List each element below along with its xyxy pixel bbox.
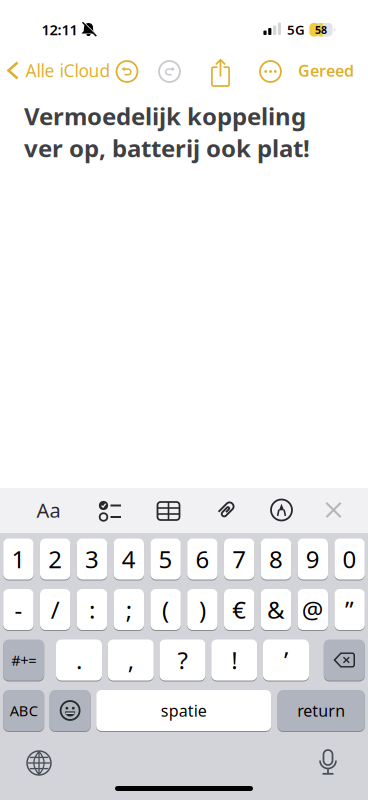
staticText: ; [126,594,132,625]
staticText: Alle iCloud [25,59,110,82]
staticText: 5 [159,543,173,575]
staticText: 8 [269,543,283,575]
button[interactable]: spatie [96,690,271,731]
button[interactable]: ) [187,589,218,630]
staticText: 3 [85,543,99,575]
button[interactable]: Checklist [96,497,121,525]
staticText: @ [302,594,324,625]
staticText: 58 [315,23,327,37]
staticText: , [128,644,134,676]
staticText: ( [162,594,169,625]
staticText: 6 [195,543,209,575]
staticText: #+= [11,650,36,670]
staticText: Aa [36,497,60,523]
staticText: 2 [48,543,62,575]
button[interactable]: 9 [298,538,328,579]
button[interactable]: 5 [150,538,181,579]
staticText: ) [199,594,206,625]
button[interactable]: ; [114,589,144,630]
button[interactable]: 3 [77,538,107,579]
button[interactable]: Emoji [50,690,91,731]
button[interactable]: Dictate [315,749,341,775]
staticText: spatie [161,700,207,721]
staticText: 1 [11,543,25,575]
button[interactable]: @ [298,589,328,630]
staticText: 5G [287,21,305,38]
staticText: 7 [232,543,246,575]
button[interactable]: Next keyboard [27,751,51,775]
button[interactable]: Table [155,498,181,524]
staticText: Vermoedelijk koppeling [24,100,306,132]
staticText: : [89,594,95,625]
button[interactable]: Delete [324,639,365,680]
button[interactable]: , [108,639,154,680]
button[interactable]: Alle iCloud [0,55,116,85]
button[interactable]: ! [211,639,257,680]
button[interactable]: 6 [187,538,218,579]
button[interactable]: € [224,589,254,630]
staticText: ! [231,644,237,676]
button[interactable]: Markup [271,499,292,520]
button[interactable]: return [278,690,365,731]
button[interactable]: / [40,589,70,630]
staticText: ” [345,594,354,625]
button[interactable]: Dismiss keyboard [325,502,341,518]
staticText: - [14,594,22,625]
button[interactable]: #+= [3,639,44,680]
staticText: 12:11 [41,20,77,39]
staticText: 9 [306,543,320,575]
staticText: ver op, batterij ook plat! [24,132,310,164]
button[interactable]: ” [334,589,365,630]
button[interactable]: . [56,639,102,680]
button[interactable]: Attach [211,495,241,525]
button[interactable]: 0 [334,538,365,579]
button[interactable]: ABC [3,690,44,731]
button[interactable]: Gereed [284,55,368,85]
staticText: 4 [122,543,136,575]
staticText: ? [177,644,187,676]
staticText: 0 [343,543,357,575]
staticText: Gereed [298,60,354,81]
button[interactable]: Redo [159,61,180,82]
button[interactable]: Share [208,58,233,87]
staticText: ’ [284,644,288,676]
button[interactable]: : [77,589,107,630]
button[interactable]: 7 [224,538,254,579]
button[interactable]: Undo [116,61,137,82]
button[interactable]: 1 [3,538,34,579]
button[interactable]: 2 [40,538,70,579]
button[interactable]: & [261,589,291,630]
staticText: & [267,594,285,625]
staticText: / [51,594,60,625]
button[interactable]: More [260,61,281,82]
button[interactable]: ? [159,639,205,680]
button[interactable]: 4 [114,538,144,579]
staticText: . [76,644,82,676]
button[interactable]: - [3,589,34,630]
button[interactable]: Format [26,490,70,530]
button[interactable]: ’ [263,639,309,680]
button[interactable]: 8 [261,538,291,579]
staticText: € [232,594,246,625]
staticText: ABC [10,701,38,720]
staticText: return [297,700,345,721]
button[interactable]: ( [150,589,181,630]
